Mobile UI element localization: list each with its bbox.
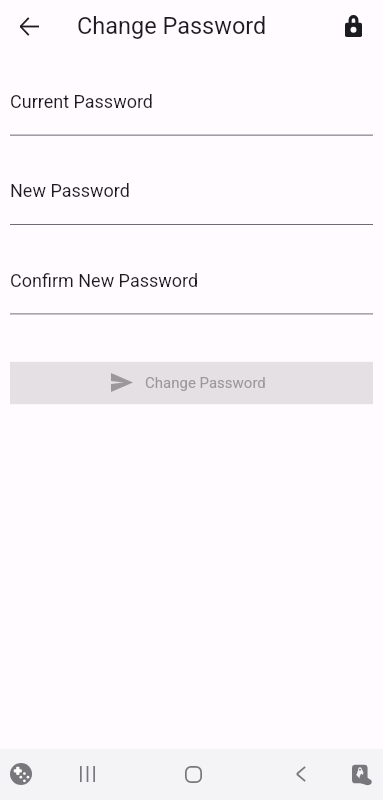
staticText: Change Password xyxy=(145,374,266,392)
button[interactable]: Confirm New Password xyxy=(10,270,373,291)
button[interactable]: Change Password xyxy=(10,361,373,403)
button[interactable]: Recent apps xyxy=(67,754,107,794)
button[interactable]: Back xyxy=(281,754,321,794)
staticText: Confirm New Password xyxy=(10,270,199,291)
button[interactable]: Input method xyxy=(342,754,382,794)
button[interactable]: Current Password xyxy=(10,91,373,112)
staticText: Change Password xyxy=(77,12,267,40)
button[interactable]: Home xyxy=(173,754,213,794)
button[interactable]: Back xyxy=(7,4,51,48)
staticText: Current Password xyxy=(10,91,154,112)
button[interactable]: Lock xyxy=(333,6,373,46)
staticText: New Password xyxy=(10,180,130,201)
button[interactable]: Game Launcher xyxy=(1,754,41,794)
button[interactable]: New Password xyxy=(10,180,373,201)
